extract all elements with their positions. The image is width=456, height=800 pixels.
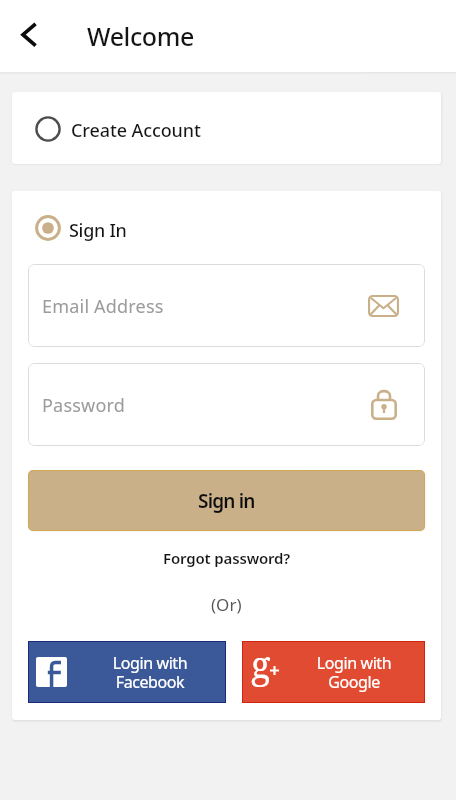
button[interactable]: g	[242, 641, 425, 703]
button[interactable]: Sign In	[35, 215, 441, 241]
staticText: g	[251, 640, 271, 688]
staticText: (Or)	[211, 593, 242, 616]
button[interactable]: Create Account	[12, 92, 441, 164]
staticText: Create Account	[71, 118, 201, 143]
button[interactable]: Forgot password?	[163, 548, 291, 568]
staticText: Email Address	[42, 294, 164, 319]
staticText: Login with Facebook	[74, 652, 226, 693]
button[interactable]: Email Address	[28, 264, 425, 347]
staticText: Welcome	[87, 19, 194, 53]
button[interactable]: Password	[28, 363, 425, 446]
button[interactable]: Sign in	[28, 470, 425, 531]
staticText: Sign in	[198, 488, 255, 514]
button[interactable]: Back	[12, 18, 48, 54]
staticText: Password	[42, 393, 126, 418]
staticText: Sign In	[69, 218, 127, 243]
staticText: Login with Google	[283, 652, 425, 693]
button[interactable]: Login with Facebook	[28, 641, 226, 703]
